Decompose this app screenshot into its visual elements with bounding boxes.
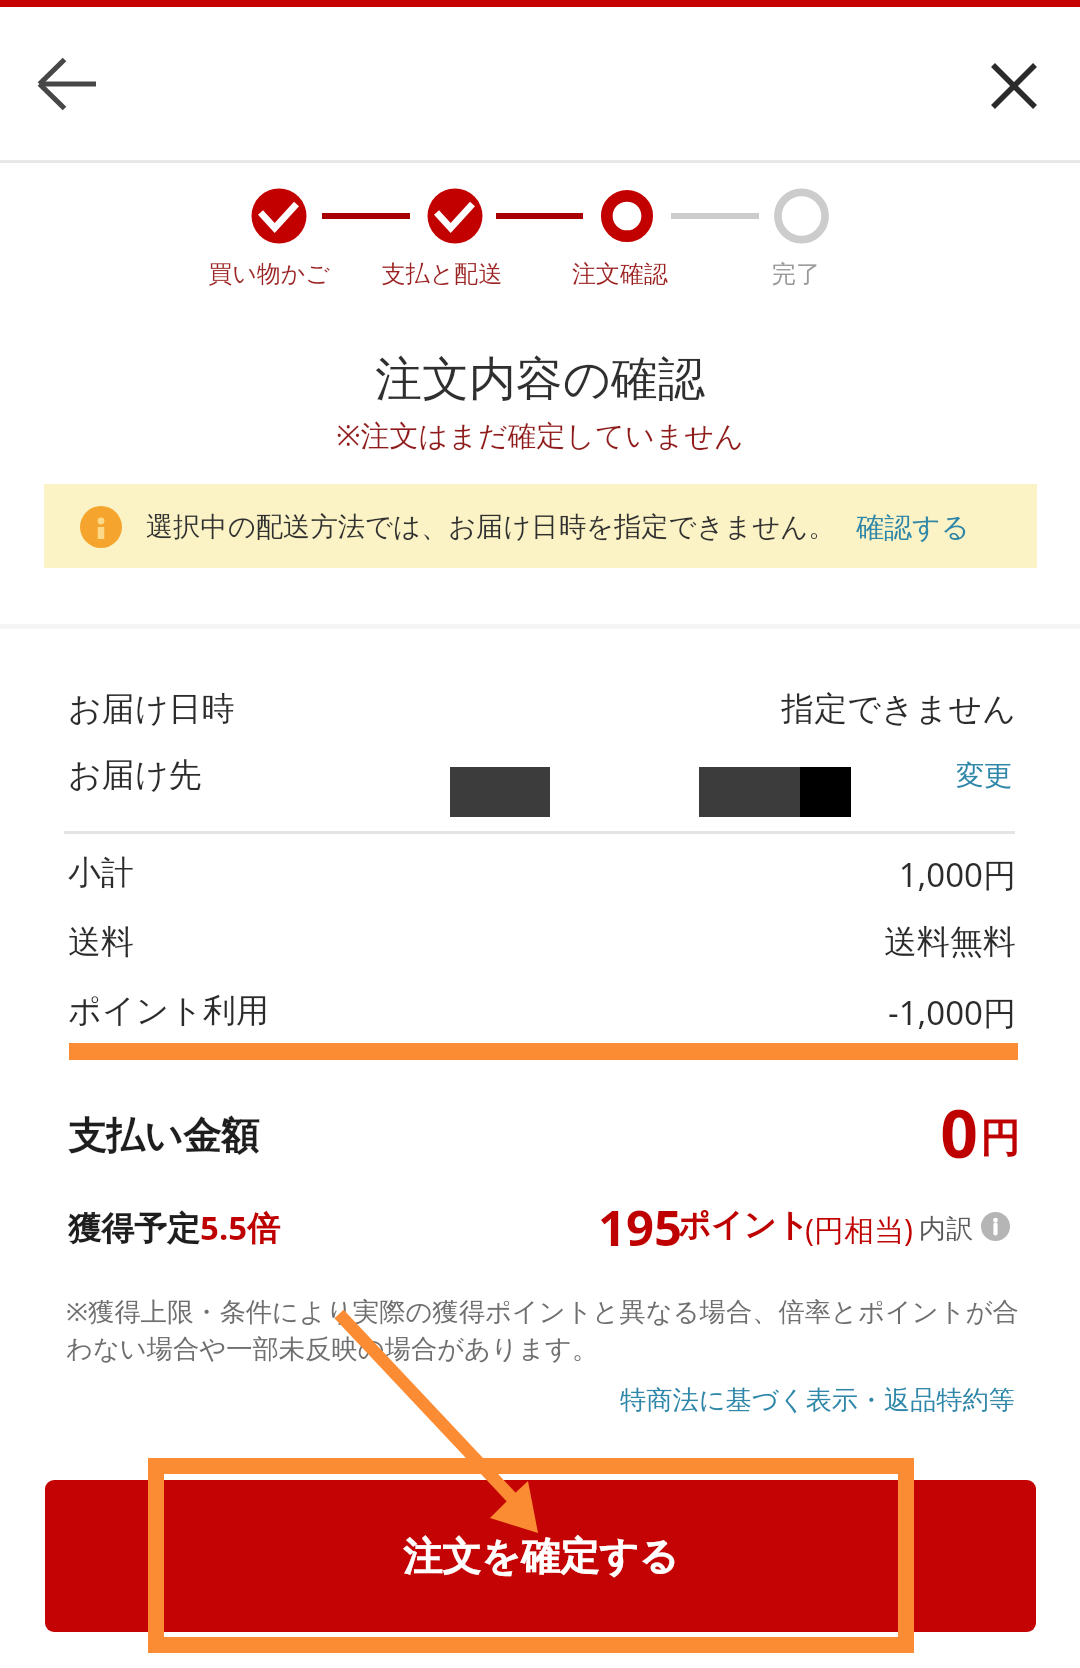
staticText: -1,000円	[500, 990, 1016, 1035]
staticText: 小計	[68, 852, 134, 894]
staticText: 変更	[956, 758, 1012, 793]
staticText: 送料	[68, 921, 134, 963]
staticText: 支払と配送	[332, 259, 552, 289]
button[interactable]: 注文確認	[510, 259, 730, 289]
staticText: 特商法に基づく表示・返品特約等	[600, 1384, 1015, 1417]
staticText: 送料無料	[500, 921, 1016, 963]
staticText: 指定できません	[500, 688, 1016, 730]
staticText: 完了	[686, 259, 906, 289]
staticText: 注文を確定する	[403, 1532, 679, 1581]
staticText: 注文内容の確認	[0, 350, 1080, 409]
staticText: ※獲得上限・条件により実際の獲得ポイントと異なる場合、倍率とポイントが合	[66, 1293, 1019, 1329]
button[interactable]: 選択中の配送方法では、お届け日時を指定できません。	[44, 484, 1037, 568]
staticText: 注文確認	[510, 259, 730, 289]
button[interactable]: 変更	[944, 746, 1024, 805]
staticText: ポイント利用	[68, 990, 270, 1032]
button[interactable]: 完了	[686, 259, 906, 289]
staticText: 選択中の配送方法では、お届け日時を指定できません。	[146, 510, 836, 544]
staticText: 買い物かご	[159, 259, 379, 289]
button[interactable]: Back	[23, 39, 113, 129]
staticText: 支払い金額	[68, 1112, 259, 1160]
staticText: お届け日時	[68, 688, 235, 730]
button[interactable]: 支払と配送	[332, 259, 552, 289]
button[interactable]: 確認する	[856, 510, 970, 545]
button[interactable]: 買い物かご	[159, 259, 379, 289]
staticText: (円相当)	[805, 1209, 913, 1250]
button[interactable]: 内訳の詳細	[981, 1212, 1010, 1241]
staticText: ※注文はまだ確定していません	[0, 415, 1080, 455]
staticText: 5.5倍	[200, 1205, 281, 1250]
staticText: わない場合や一部未反映の場合があります。	[66, 1333, 599, 1366]
staticText: ポイント	[678, 1205, 809, 1245]
button[interactable]: 特商法に基づく表示・返品特約等	[588, 1372, 1027, 1429]
staticText: お届け先	[68, 754, 202, 796]
staticText: 獲得予定	[68, 1208, 200, 1250]
button[interactable]: 注文を確定する	[45, 1480, 1036, 1632]
staticText: 0	[880, 1087, 978, 1177]
staticText: 1,000円	[500, 852, 1016, 897]
staticText: 円	[980, 1113, 1020, 1163]
staticText: 195	[598, 1194, 683, 1261]
staticText: 内訳	[919, 1212, 973, 1246]
button[interactable]: Close	[969, 41, 1059, 131]
